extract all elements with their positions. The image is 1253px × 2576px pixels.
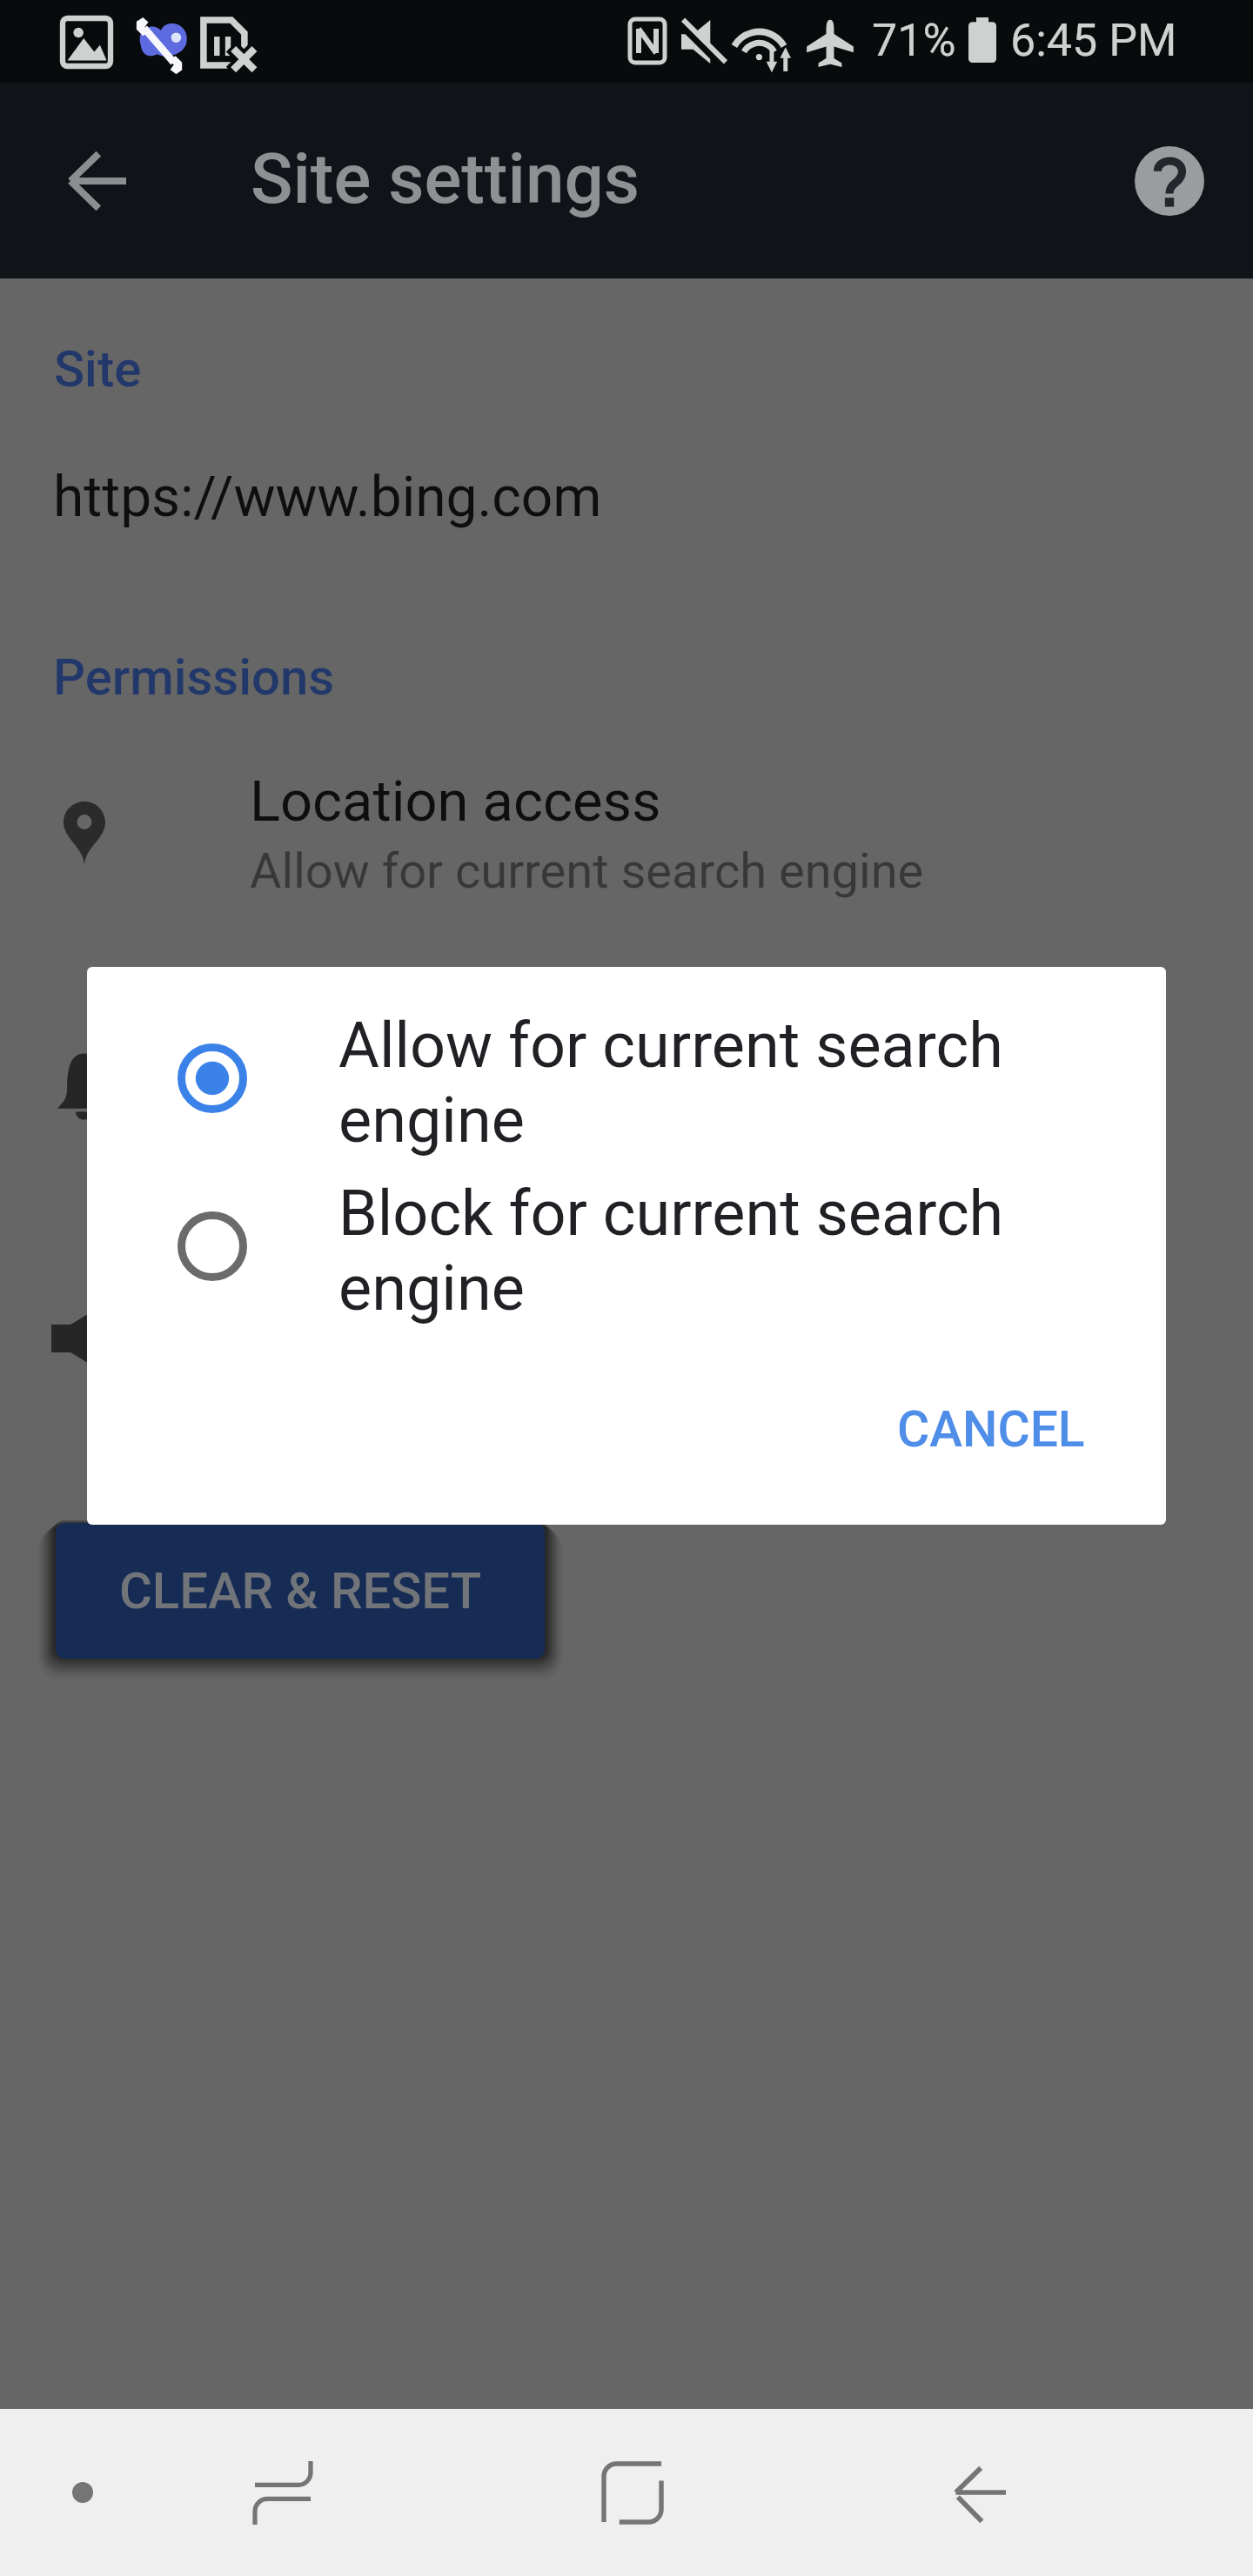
staticText: Allow for current search engine (338, 1008, 1061, 1157)
button[interactable]: Back (893, 2409, 1067, 2576)
staticText: Location access (250, 768, 661, 835)
staticText: CANCEL (897, 1400, 1085, 1459)
staticText: Permissions (53, 647, 335, 707)
button[interactable]: Home (546, 2409, 720, 2576)
button[interactable]: Help and feedback (1121, 132, 1218, 230)
staticText: CLEAR & RESET (119, 1561, 481, 1620)
staticText: Site (54, 339, 142, 399)
staticText: 71% (872, 14, 956, 67)
button[interactable]: Notifications (0, 1007, 1253, 1177)
button[interactable]: Block for current search engine (87, 1135, 1166, 1303)
button[interactable]: CLEAR & RESET (56, 1523, 545, 1659)
button[interactable]: Recent apps (196, 2409, 370, 2576)
staticText: Block for current search engine (338, 1176, 1061, 1325)
staticText: Site settings (251, 138, 640, 220)
staticText: https://www.bing.com (53, 465, 602, 530)
button[interactable]: Allow for current search engine (87, 967, 1166, 1135)
staticText: Allow for current search engine (250, 842, 924, 900)
staticText: 6:45 PM (1010, 14, 1177, 67)
button[interactable]: Sound (0, 1265, 1253, 1435)
button[interactable]: CANCEL (859, 1372, 1123, 1486)
button[interactable]: Location access (0, 751, 1253, 922)
button[interactable]: Navigate up (38, 122, 157, 240)
button[interactable]: Menu (22, 2409, 144, 2576)
